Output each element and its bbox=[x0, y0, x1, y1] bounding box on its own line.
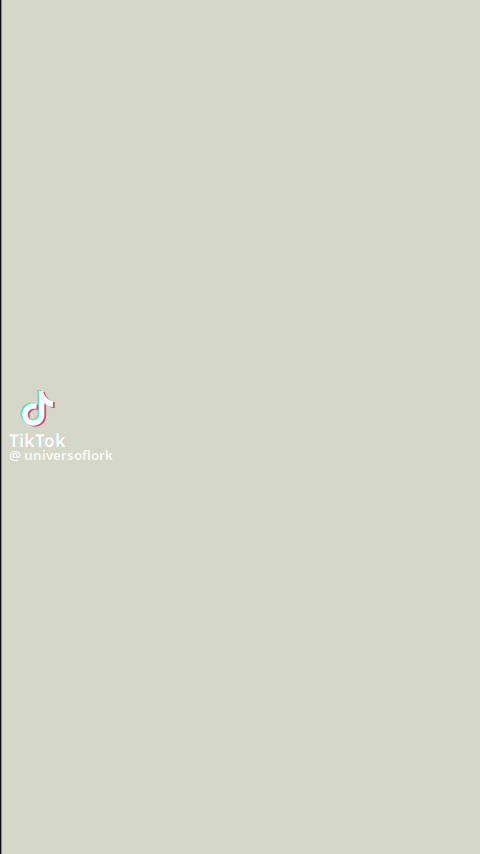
staticText: TikTok bbox=[9, 429, 66, 452]
staticText: @ universoflork bbox=[9, 446, 113, 464]
button[interactable]: TikTok — @universoflork bbox=[9, 390, 121, 473]
